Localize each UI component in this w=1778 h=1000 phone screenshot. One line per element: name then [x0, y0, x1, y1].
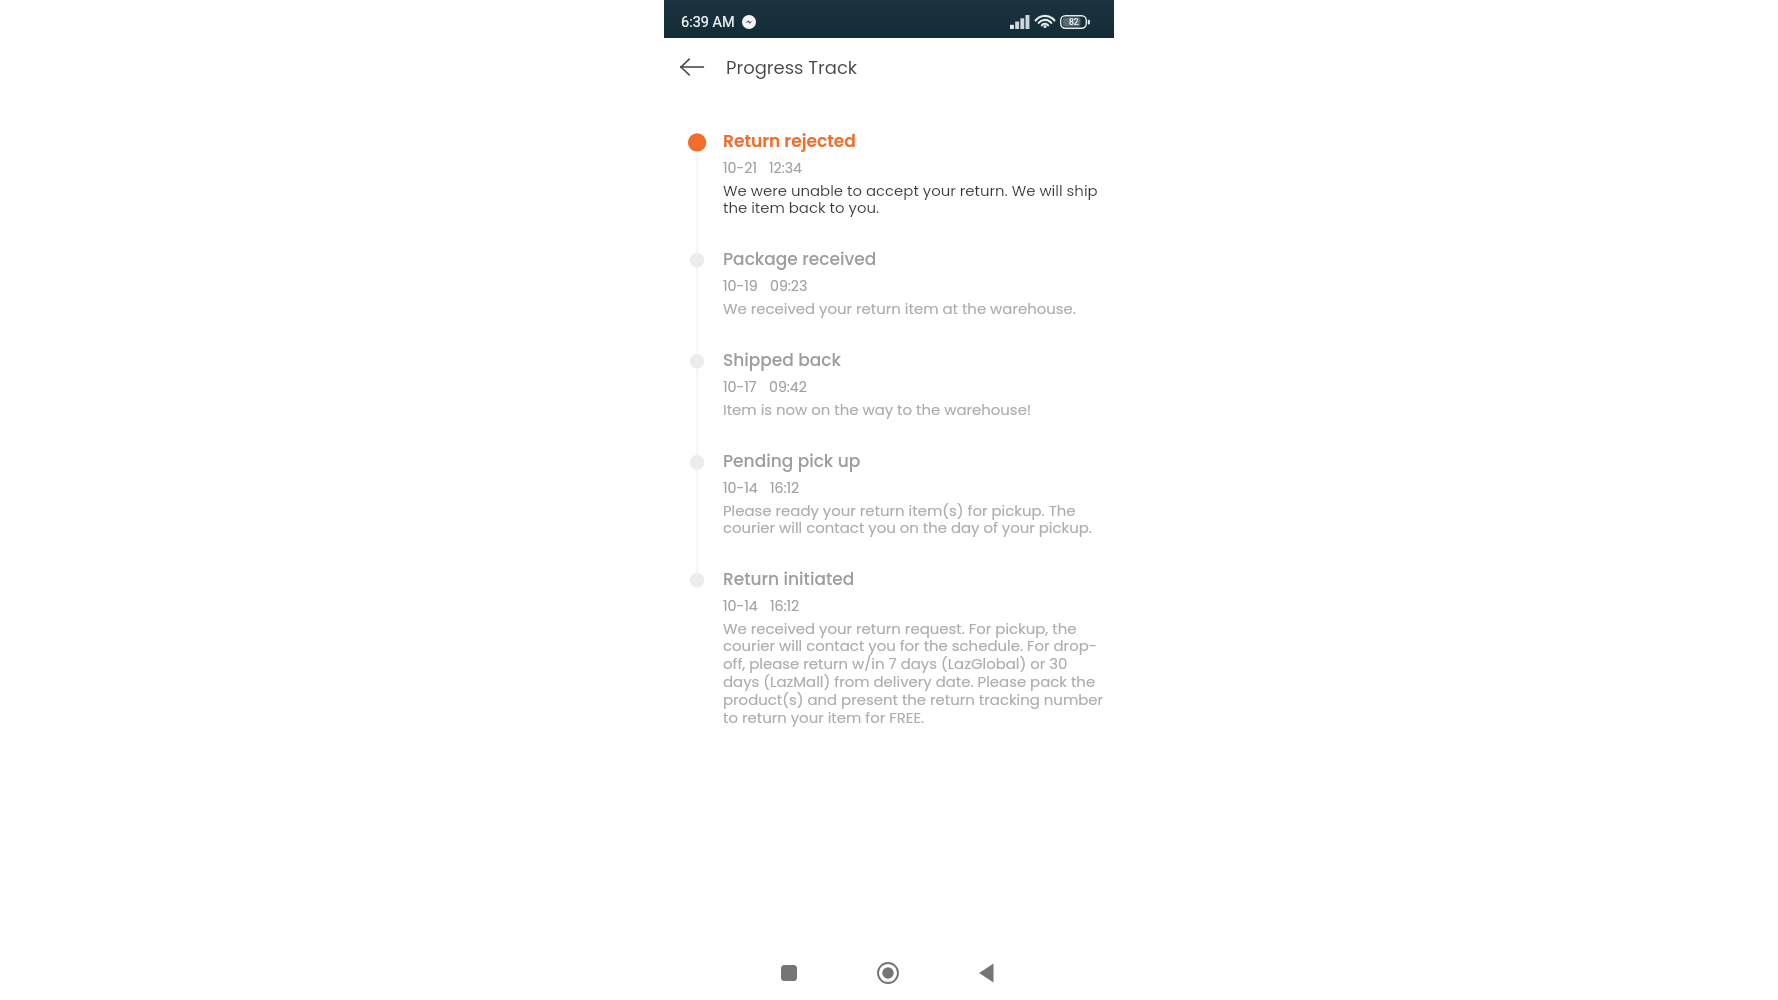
- button[interactable]: Return initiated: [684, 567, 1114, 757]
- staticText: 6:39 AM: [681, 14, 735, 31]
- staticText: 10-14: [723, 596, 758, 616]
- staticText: Return initiated: [723, 567, 855, 591]
- button[interactable]: Pending pick up: [684, 449, 1114, 567]
- staticText: Package received: [723, 247, 877, 271]
- staticText: 16:12: [770, 478, 800, 498]
- staticText: Progress Track: [726, 55, 858, 80]
- staticText: We were unable to accept your return. We…: [723, 180, 1105, 218]
- staticText: 10-19: [723, 276, 758, 296]
- staticText: Pending pick up: [723, 449, 861, 473]
- button[interactable]: Package received: [684, 247, 1114, 348]
- staticText: Return rejected: [723, 129, 856, 153]
- staticText: We received your return request. For pic…: [723, 618, 1105, 728]
- staticText: Item is now on the way to the warehouse!: [723, 399, 1032, 420]
- staticText: 10-21: [723, 158, 757, 178]
- staticText: Shipped back: [723, 348, 841, 372]
- staticText: 10-17: [723, 377, 757, 397]
- staticText: 82: [1069, 17, 1079, 27]
- staticText: Please ready your return item(s) for pic…: [723, 500, 1105, 538]
- button[interactable]: Return rejected: [684, 129, 1114, 247]
- staticText: 16:12: [770, 596, 800, 616]
- button[interactable]: Shipped back: [684, 348, 1114, 449]
- staticText: 12:34: [769, 158, 803, 178]
- button[interactable]: Home: [870, 955, 906, 991]
- button[interactable]: Back: [968, 955, 1004, 991]
- staticText: 09:23: [770, 276, 808, 296]
- staticText: 09:42: [769, 377, 807, 397]
- button[interactable]: Recent apps: [771, 955, 807, 991]
- button[interactable]: Back: [670, 45, 714, 89]
- staticText: 10-14: [723, 478, 758, 498]
- staticText: We received your return item at the ware…: [723, 298, 1076, 319]
